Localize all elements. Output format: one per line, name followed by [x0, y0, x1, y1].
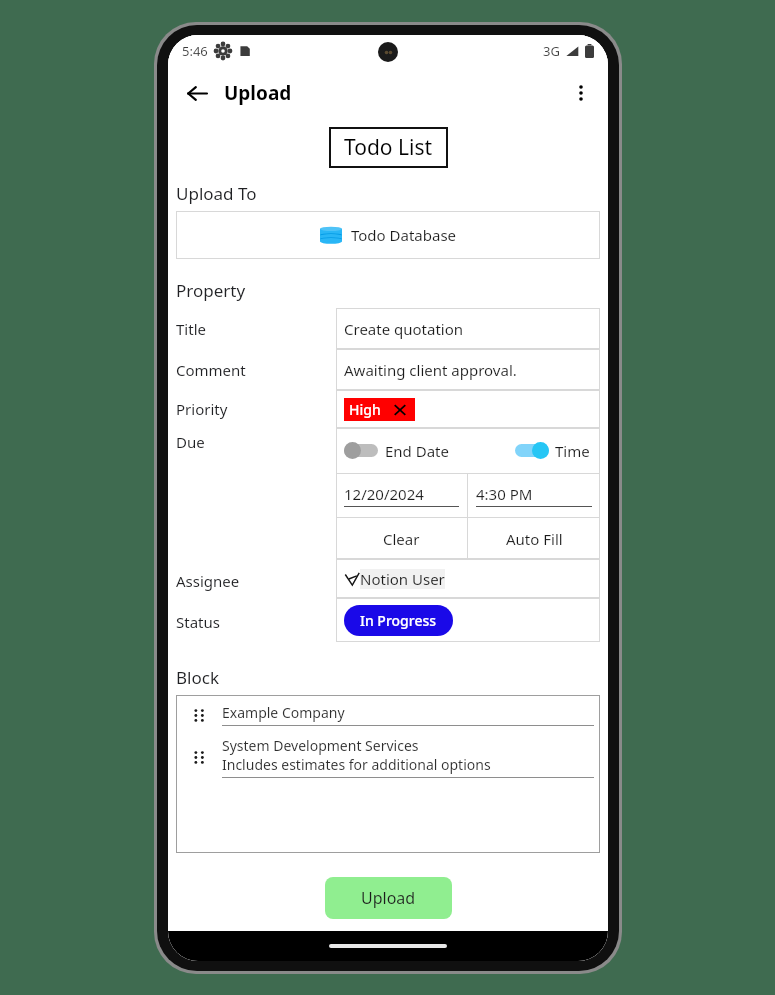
staticText: 12/20/2024	[344, 484, 424, 504]
staticText: Notion User	[360, 569, 445, 589]
staticText: Example Company	[222, 703, 345, 722]
button[interactable]: High	[344, 398, 415, 421]
staticText: Todo Database	[351, 225, 457, 245]
button[interactable]: In Progress	[344, 605, 453, 636]
staticText: 4:30 PM	[476, 484, 533, 504]
staticText: Upload	[361, 887, 416, 909]
staticText: Create quotation	[344, 319, 464, 339]
staticText: Property	[176, 279, 246, 302]
staticText: Includes estimates for additional option…	[222, 755, 491, 774]
staticText: System Development Services	[222, 736, 419, 755]
staticText: 3G	[543, 42, 560, 60]
button[interactable]: High	[336, 390, 600, 428]
staticText: Due	[176, 432, 205, 452]
staticText: Upload	[224, 80, 292, 106]
button[interactable]: Upload	[325, 877, 452, 919]
button[interactable]: In Progress	[336, 598, 600, 642]
staticText: Comment	[176, 360, 246, 380]
button[interactable]: 12/20/2024	[336, 474, 467, 517]
staticText: Time	[555, 441, 590, 461]
button[interactable]: Auto Fill	[468, 518, 600, 559]
button[interactable]: More options	[560, 72, 602, 114]
button[interactable]: Time on	[515, 442, 549, 459]
staticText: Assignee	[176, 571, 240, 591]
staticText: High	[349, 400, 381, 419]
staticText: Auto Fill	[506, 529, 563, 549]
other: Drag handle	[190, 748, 208, 766]
staticText: Todo List	[344, 133, 433, 162]
staticText: Block	[176, 666, 219, 689]
staticText: 5:46	[182, 42, 208, 60]
button[interactable]: Todo Database	[176, 211, 600, 259]
button[interactable]: End Date off	[344, 442, 378, 459]
staticText: Status	[176, 612, 220, 632]
staticText: Upload To	[176, 182, 257, 205]
button[interactable]: Todo List	[329, 127, 448, 168]
button[interactable]: Back	[176, 72, 218, 114]
button[interactable]: Clear	[336, 518, 467, 559]
button[interactable]: Drag handle	[176, 736, 600, 778]
staticText: In Progress	[360, 611, 437, 630]
button[interactable]: 4:30 PM	[468, 474, 600, 517]
staticText: Clear	[383, 529, 420, 549]
other: Drag handle	[190, 706, 208, 724]
button[interactable]: Drag handle	[176, 703, 600, 726]
button[interactable]: Awaiting client approval.	[336, 349, 600, 390]
button[interactable]: Create quotation	[336, 308, 600, 349]
staticText: Awaiting client approval.	[344, 360, 517, 380]
staticText: Title	[176, 319, 206, 339]
staticText: End Date	[385, 441, 449, 461]
button[interactable]: Notion User	[336, 559, 600, 598]
staticText: Priority	[176, 399, 228, 419]
